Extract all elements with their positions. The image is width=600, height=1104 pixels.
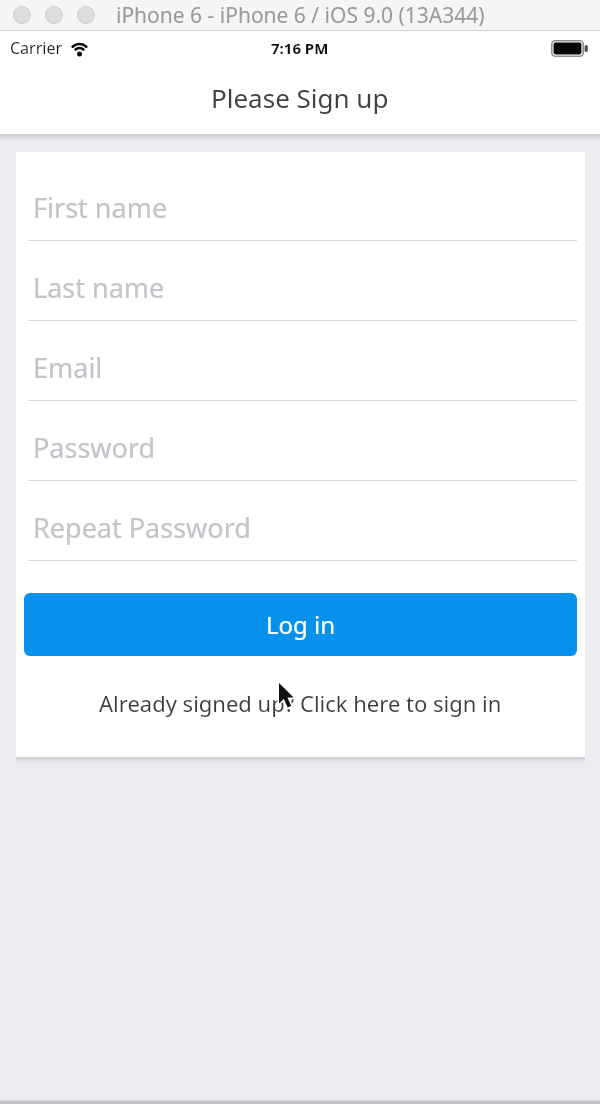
staticText: First name [33,189,168,226]
staticText: Log in [266,608,336,641]
staticText: Password [33,429,156,466]
button[interactable]: Email [16,334,585,400]
staticText: Already signed up? Click here to sign in [99,688,502,718]
staticText: Repeat Password [33,509,251,546]
staticText: 7:16 PM [271,38,329,58]
staticText: Please Sign up [211,80,389,115]
button[interactable]: Repeat Password [16,494,585,560]
staticText: Carrier [10,37,63,59]
button[interactable]: Log in [24,593,577,656]
staticText: Last name [33,269,165,306]
button[interactable]: Already signed up? Click here to sign in [16,680,585,726]
button[interactable]: Last name [16,254,585,320]
staticText: Email [33,349,103,386]
button[interactable]: First name [16,174,585,240]
button[interactable]: Password [16,414,585,480]
staticText: iPhone 6 - iPhone 6 / iOS 9.0 (13A344) [116,1,485,30]
